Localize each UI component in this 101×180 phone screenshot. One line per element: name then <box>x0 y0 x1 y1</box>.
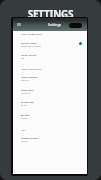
button[interactable]: Record Audio <box>13 38 87 50</box>
button[interactable]: Output Format <box>13 133 87 145</box>
button[interactable]: Frame rate <box>13 97 87 109</box>
staticText: Audio Source <box>21 53 37 56</box>
button[interactable]: Resolution <box>13 85 87 97</box>
staticText: Decide side to monitor <box>21 45 42 48</box>
staticText: 4 Mbps <box>21 117 28 120</box>
button[interactable]: Menu <box>13 18 25 31</box>
staticText: Misc <box>21 129 26 132</box>
staticText: Frame rate <box>21 100 34 103</box>
staticText: SETTINGS <box>0 7 101 21</box>
button[interactable]: Search <box>69 23 82 28</box>
button[interactable]: Video encoder <box>13 72 87 84</box>
staticText: MPEG_4 <box>21 140 29 143</box>
staticText: Bit rate <box>21 113 30 116</box>
staticText: 1920x1080 <box>21 92 31 95</box>
staticText: 30 FPS <box>21 104 27 107</box>
staticText: Resolution <box>21 88 34 91</box>
button[interactable]: Audio Source <box>13 50 87 62</box>
staticText: Video Configuration <box>21 68 42 71</box>
staticText: MIC <box>21 57 25 60</box>
staticText: Record Audio <box>21 41 37 44</box>
staticText: Output Format <box>21 136 39 139</box>
staticText: Settings <box>48 22 62 27</box>
staticText: DEFAULT <box>21 79 29 82</box>
staticText: Video encoder <box>21 75 38 78</box>
staticText: Audio Configuration <box>21 33 43 36</box>
button[interactable]: Bit rate <box>13 110 87 122</box>
